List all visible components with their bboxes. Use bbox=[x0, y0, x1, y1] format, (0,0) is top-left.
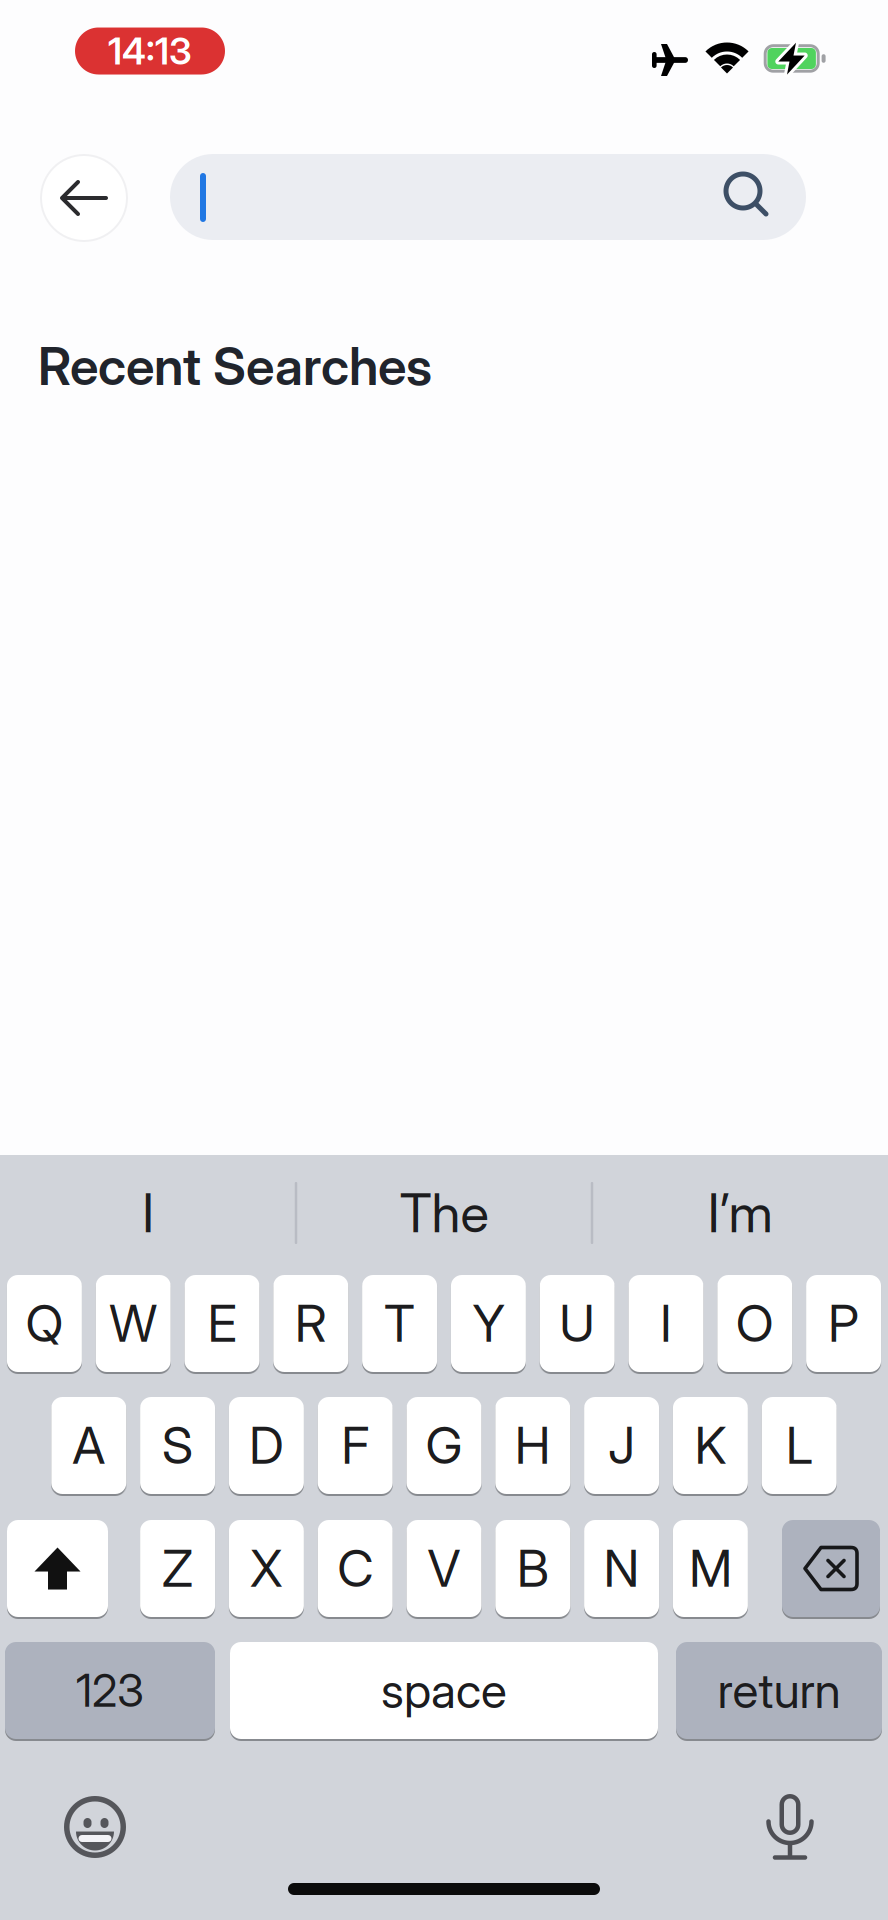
staticText: Z bbox=[162, 1538, 193, 1599]
staticText: F bbox=[341, 1415, 369, 1476]
button[interactable]: W bbox=[96, 1275, 171, 1372]
staticText: H bbox=[515, 1415, 551, 1476]
button[interactable]: E bbox=[184, 1275, 259, 1372]
staticText: S bbox=[162, 1415, 193, 1476]
staticText: O bbox=[736, 1293, 774, 1354]
staticText: G bbox=[425, 1415, 462, 1476]
staticText: K bbox=[694, 1415, 726, 1476]
button[interactable]: V bbox=[406, 1520, 481, 1617]
button[interactable]: I bbox=[628, 1275, 703, 1372]
button[interactable]: T bbox=[362, 1275, 437, 1372]
button[interactable]: Y bbox=[451, 1275, 526, 1372]
button[interactable]: C bbox=[318, 1520, 393, 1617]
button[interactable]: Shift bbox=[7, 1520, 108, 1617]
button[interactable]: Stop screen recording bbox=[75, 27, 225, 74]
button[interactable]: Q bbox=[7, 1275, 82, 1372]
staticText: L bbox=[786, 1415, 813, 1476]
staticText: A bbox=[72, 1415, 105, 1476]
button[interactable]: X bbox=[229, 1520, 304, 1617]
button[interactable]: J bbox=[584, 1397, 659, 1494]
staticText: V bbox=[427, 1538, 460, 1599]
staticText: C bbox=[337, 1538, 373, 1599]
button[interactable]: K bbox=[673, 1397, 748, 1494]
button[interactable]: I’m bbox=[595, 1163, 885, 1263]
staticText: X bbox=[250, 1538, 283, 1599]
staticText: Y bbox=[472, 1293, 504, 1354]
button[interactable]: A bbox=[51, 1397, 126, 1494]
staticText: B bbox=[517, 1538, 549, 1599]
button[interactable]: L bbox=[762, 1397, 837, 1494]
staticText: R bbox=[295, 1293, 327, 1354]
button[interactable]: H bbox=[495, 1397, 570, 1494]
staticText: U bbox=[559, 1293, 595, 1354]
button[interactable]: U bbox=[540, 1275, 615, 1372]
staticText: M bbox=[689, 1538, 732, 1599]
staticText: Recent Searches bbox=[38, 335, 432, 397]
staticText: The bbox=[399, 1181, 488, 1245]
button[interactable]: B bbox=[495, 1520, 570, 1617]
staticText: J bbox=[608, 1415, 635, 1476]
staticText: I bbox=[660, 1293, 672, 1354]
staticText: 14:13 bbox=[108, 29, 192, 73]
button[interactable]: N bbox=[584, 1520, 659, 1617]
button[interactable]: space bbox=[230, 1642, 658, 1739]
staticText: T bbox=[384, 1293, 415, 1354]
button[interactable]: The bbox=[299, 1163, 589, 1263]
staticText: return bbox=[717, 1661, 840, 1720]
button[interactable]: I bbox=[3, 1163, 293, 1263]
button[interactable]: Emoji bbox=[63, 1795, 127, 1859]
button[interactable]: Z bbox=[140, 1520, 215, 1617]
button[interactable]: F bbox=[318, 1397, 393, 1494]
staticText: space bbox=[381, 1661, 507, 1720]
button[interactable]: P bbox=[806, 1275, 881, 1372]
button[interactable]: Back bbox=[40, 154, 128, 242]
staticText: 123 bbox=[76, 1663, 144, 1718]
staticText: E bbox=[207, 1293, 236, 1354]
button[interactable]: Search bbox=[170, 154, 806, 240]
button[interactable]: 123 bbox=[5, 1642, 215, 1739]
staticText: P bbox=[828, 1293, 859, 1354]
staticText: I bbox=[142, 1181, 154, 1245]
button[interactable]: Dictation bbox=[767, 1791, 813, 1861]
staticText: Q bbox=[25, 1293, 63, 1354]
staticText: D bbox=[249, 1415, 284, 1476]
button[interactable]: R bbox=[273, 1275, 348, 1372]
button[interactable]: S bbox=[140, 1397, 215, 1494]
button[interactable]: return bbox=[676, 1642, 882, 1739]
staticText: I’m bbox=[707, 1181, 772, 1245]
staticText: N bbox=[604, 1538, 640, 1599]
button[interactable]: M bbox=[673, 1520, 748, 1617]
button[interactable]: D bbox=[229, 1397, 304, 1494]
button[interactable]: Delete bbox=[782, 1520, 880, 1617]
staticText: W bbox=[109, 1293, 157, 1354]
button[interactable]: G bbox=[406, 1397, 481, 1494]
button[interactable]: O bbox=[717, 1275, 792, 1372]
